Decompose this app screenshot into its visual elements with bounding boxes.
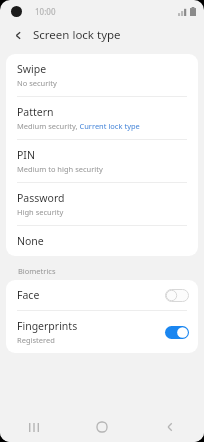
- button[interactable]: Off: [165, 289, 189, 302]
- staticText: Screen lock type: [33, 27, 121, 43]
- staticText: Fingerprints: [17, 319, 78, 333]
- button[interactable]: Fingerprints: [6, 311, 198, 353]
- button[interactable]: Swipe: [6, 54, 198, 96]
- staticText: 10:00: [35, 6, 56, 17]
- staticText: Registered: [17, 335, 55, 345]
- button[interactable]: Back: [136, 412, 204, 442]
- button[interactable]: Home: [68, 412, 136, 442]
- staticText: PIN: [17, 148, 35, 162]
- button[interactable]: None: [6, 226, 198, 256]
- button[interactable]: Back: [9, 26, 27, 44]
- button[interactable]: Pattern: [6, 97, 198, 139]
- button[interactable]: On: [165, 326, 189, 339]
- button[interactable]: PIN: [6, 140, 198, 182]
- staticText: Password: [17, 191, 65, 205]
- staticText: Swipe: [17, 62, 47, 76]
- staticText: Face: [17, 288, 40, 302]
- staticText: Medium security, Current lock type: [17, 121, 140, 131]
- staticText: High security: [17, 207, 64, 217]
- button[interactable]: Recents: [0, 412, 68, 442]
- staticText: Biometrics: [18, 266, 56, 276]
- staticText: No security: [17, 78, 57, 88]
- button[interactable]: Face: [6, 280, 198, 310]
- staticText: Pattern: [17, 105, 54, 119]
- button[interactable]: Password: [6, 183, 198, 225]
- staticText: Medium to high security: [17, 164, 103, 174]
- staticText: None: [17, 234, 44, 248]
